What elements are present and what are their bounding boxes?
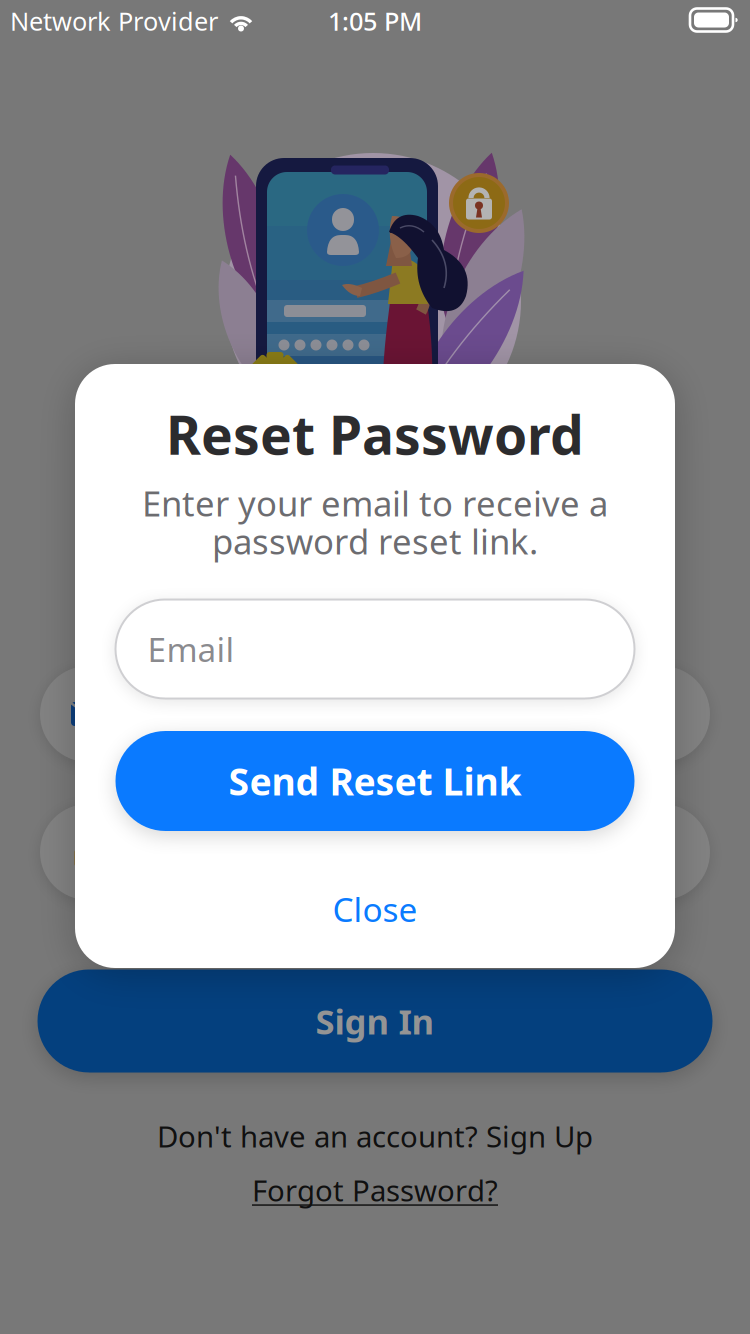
staticText: Network Provider [10, 4, 218, 38]
staticText: Email [147, 627, 234, 671]
staticText: Don't have an account? Sign Up [157, 1116, 593, 1155]
staticText: Forgot Password? [252, 1170, 498, 1209]
staticText: Sign In [315, 998, 434, 1044]
button[interactable]: Email [115, 599, 634, 698]
staticText: Send Reset Link [228, 756, 521, 806]
button[interactable]: Email [40, 666, 710, 762]
button[interactable]: Send Reset Link [115, 731, 634, 831]
staticText: Reset Password [166, 399, 584, 469]
button[interactable]: Password [40, 804, 710, 900]
staticText: password reset link. [212, 518, 538, 564]
button[interactable]: Sign In [37, 969, 712, 1072]
button[interactable]: Don't have an account? Sign Up [95, 1113, 655, 1159]
staticText: Close [332, 887, 417, 931]
button[interactable]: Close [265, 878, 485, 940]
staticText: 1:05 PM [328, 4, 422, 38]
staticText: Enter your email to receive a [142, 480, 608, 526]
button[interactable]: Forgot Password? [195, 1167, 555, 1213]
